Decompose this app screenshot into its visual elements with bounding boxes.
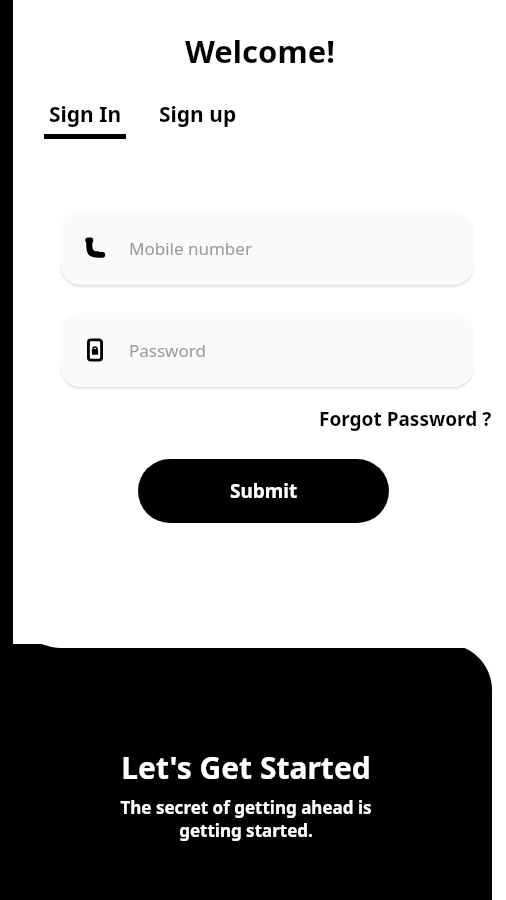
button[interactable]: Forgot Password ? [319,404,506,434]
other: Password [84,339,106,361]
staticText: Welcome! [185,30,335,72]
staticText: Forgot Password ? [319,406,492,432]
staticText: Submit [230,478,298,504]
staticText: Sign In [49,100,122,129]
staticText: Mobile number [129,237,252,260]
button[interactable]: Password [60,313,474,387]
staticText: Let's Get Started [121,747,371,788]
button[interactable]: Submit [138,459,389,523]
button[interactable]: Phone [60,211,474,285]
other: Phone [84,237,106,259]
staticText: The secret of getting ahead is getting s… [120,796,372,842]
staticText: Sign up [159,100,237,129]
staticText: Password [129,339,206,362]
button[interactable]: Sign In [44,100,126,139]
button[interactable]: Sign up [159,100,237,129]
